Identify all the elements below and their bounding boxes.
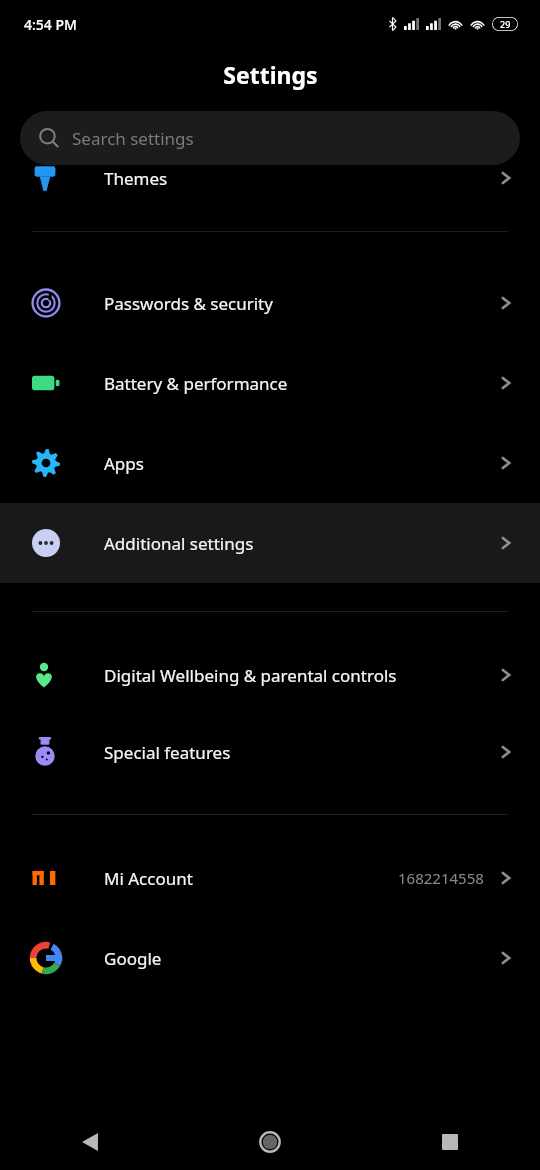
staticText: Battery & performance	[104, 372, 496, 395]
staticText: 4:54 PM	[24, 15, 77, 34]
button[interactable]: Apps	[0, 423, 540, 503]
staticText: Google	[104, 947, 496, 970]
staticText: Digital Wellbeing & parental controls	[104, 664, 496, 687]
button[interactable]: Digital Wellbeing & parental controls	[0, 638, 540, 712]
button[interactable]: Back	[0, 1114, 180, 1170]
button[interactable]: Passwords & security	[0, 263, 540, 343]
button[interactable]: Special features	[0, 712, 540, 792]
staticText: Settings	[223, 59, 318, 90]
staticText: Additional settings	[104, 532, 496, 555]
staticText: Search settings	[72, 127, 194, 150]
staticText: Themes	[104, 167, 496, 190]
button[interactable]: Mi Account	[0, 838, 540, 918]
staticText: 1682214558	[398, 868, 484, 888]
staticText: 29	[500, 18, 511, 30]
staticText: Special features	[104, 741, 496, 764]
button[interactable]: Search settings	[20, 111, 520, 165]
staticText: Mi Account	[104, 867, 398, 890]
button[interactable]: Additional settings	[0, 503, 540, 583]
button[interactable]: Google	[0, 918, 540, 998]
staticText: Passwords & security	[104, 292, 496, 315]
button[interactable]: Themes	[0, 165, 540, 191]
button[interactable]: Recents	[360, 1114, 540, 1170]
button[interactable]: Battery & performance	[0, 343, 540, 423]
staticText: Apps	[104, 452, 496, 475]
button[interactable]: Home	[180, 1114, 360, 1170]
